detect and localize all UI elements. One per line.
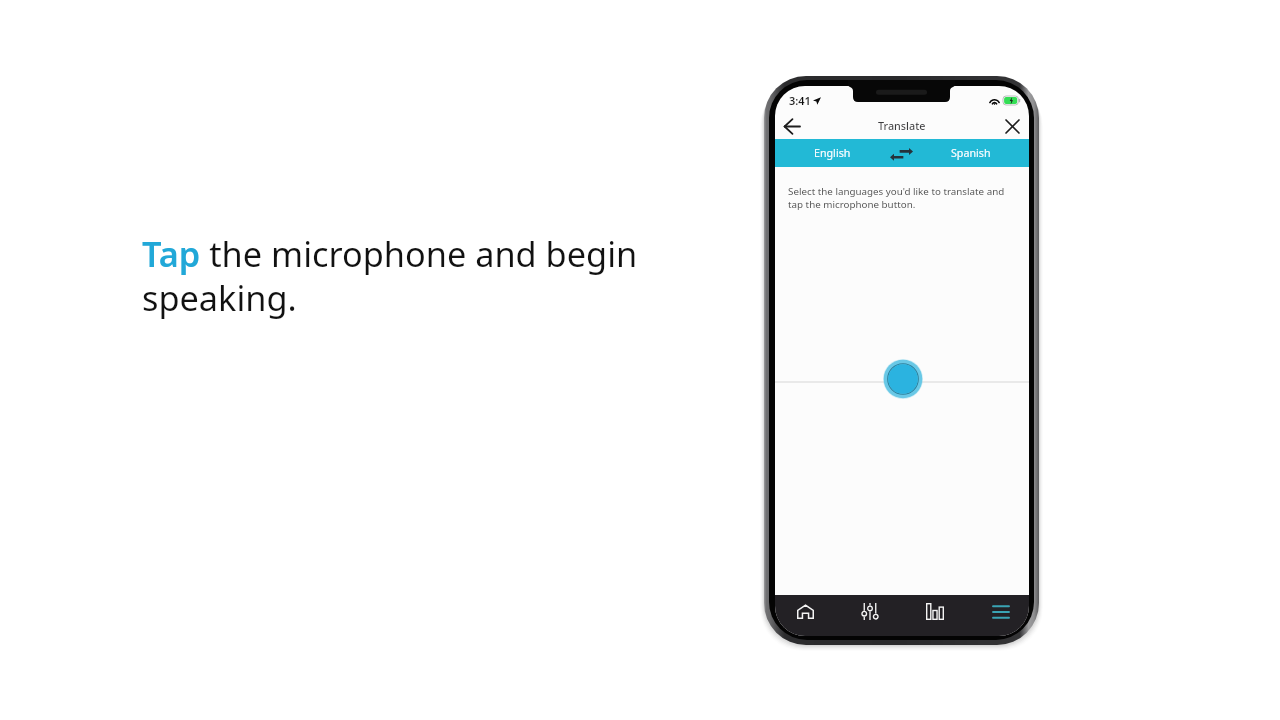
staticText: English — [814, 146, 851, 161]
button[interactable]: Menu — [965, 595, 1029, 636]
button[interactable]: Back — [781, 115, 803, 137]
button[interactable]: English — [775, 139, 890, 167]
staticText: Translate — [878, 118, 926, 133]
staticText: Tap the microphone and begin speaking. — [142, 230, 672, 321]
staticText: Spanish — [951, 146, 991, 161]
button[interactable]: Close — [1001, 115, 1023, 137]
staticText: Select the languages you'd like to trans… — [788, 185, 1014, 211]
button[interactable]: Spanish — [913, 139, 1029, 167]
staticText: 3:41 — [789, 93, 811, 108]
button[interactable]: Microphone — [883, 359, 923, 399]
button[interactable]: Swap languages — [890, 139, 913, 167]
button[interactable]: Home — [775, 595, 838, 636]
button[interactable]: Statistics — [901, 595, 965, 636]
button[interactable]: Adjustments — [838, 595, 901, 636]
